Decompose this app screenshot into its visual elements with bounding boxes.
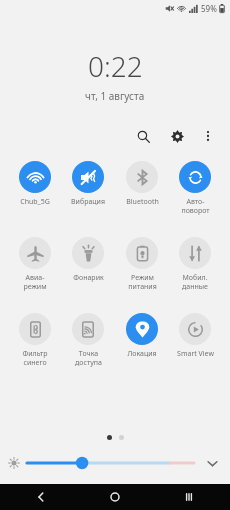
button[interactable]: Search: [130, 123, 156, 149]
button[interactable]: Chub_5G: [10, 159, 60, 209]
button[interactable]: Bluetooth: [117, 159, 167, 209]
button[interactable]: Back: [30, 486, 52, 508]
button[interactable]: Recent apps: [178, 486, 200, 508]
staticText: Вибрация: [71, 197, 105, 207]
button[interactable]: Settings: [164, 123, 190, 149]
button[interactable]: Smart View: [170, 311, 220, 361]
button[interactable]: Режим питания: [117, 235, 167, 293]
button[interactable]: Brightness: [27, 452, 194, 474]
button[interactable]: Home: [104, 486, 126, 508]
staticText: 0:22: [88, 47, 143, 85]
button[interactable]: Фонарик: [63, 235, 113, 285]
button[interactable]: Вибрация: [63, 159, 113, 209]
staticText: Авиа- режим: [23, 273, 47, 291]
button[interactable]: More options: [196, 124, 220, 148]
button[interactable]: Локация: [117, 311, 167, 361]
staticText: Фильтр синего: [22, 349, 48, 367]
button[interactable]: Фильтр синего: [10, 311, 60, 369]
staticText: Точка доступа: [75, 349, 102, 367]
staticText: Мобил. данные: [182, 273, 208, 291]
staticText: Локация: [127, 349, 157, 359]
staticText: Режим питания: [128, 273, 157, 291]
button[interactable]: Expand brightness settings: [202, 453, 222, 473]
staticText: 59%: [201, 3, 217, 14]
button[interactable]: Мобил. данные: [170, 235, 220, 293]
button[interactable]: Точка доступа: [63, 311, 113, 369]
button[interactable]: Авиа- режим: [10, 235, 60, 293]
staticText: Bluetooth: [126, 197, 159, 207]
staticText: Smart View: [177, 349, 214, 359]
staticText: Фонарик: [73, 273, 104, 283]
staticText: Авто- поворот: [181, 197, 210, 215]
staticText: Chub_5G: [20, 197, 50, 207]
staticText: чт, 1 августа: [85, 89, 145, 103]
button[interactable]: Авто- поворот: [170, 159, 220, 217]
